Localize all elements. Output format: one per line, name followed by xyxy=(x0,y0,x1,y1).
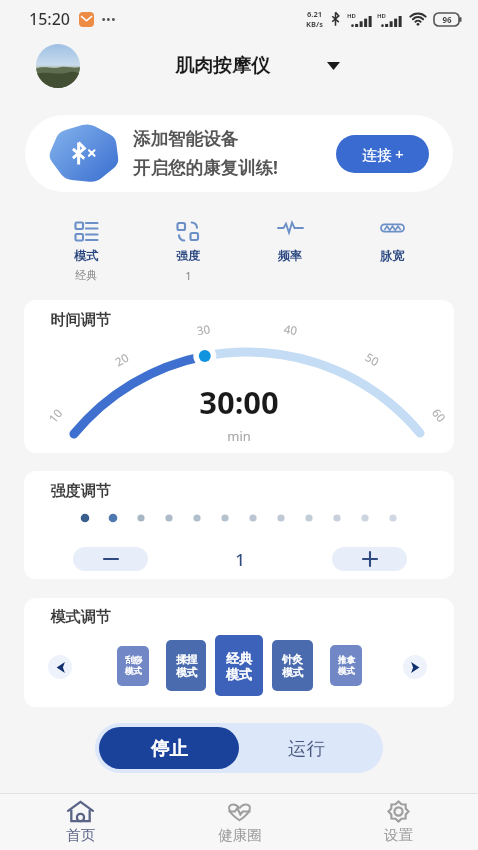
staticText: 经典 xyxy=(75,268,97,282)
staticText: 连接 + xyxy=(362,144,404,164)
staticText: 频率 xyxy=(278,248,302,263)
button[interactable]: 脉宽 xyxy=(341,219,443,268)
button[interactable]: Decrease xyxy=(73,547,148,571)
button[interactable]: 针灸 xyxy=(272,640,313,691)
staticText: 1 xyxy=(235,548,245,571)
staticText: 停止 xyxy=(151,737,188,760)
button[interactable]: 揉捏 xyxy=(166,640,206,691)
staticText: 时间调节 xyxy=(50,310,111,329)
staticText: 设置 xyxy=(384,826,413,844)
staticText: HD xyxy=(377,12,386,20)
button[interactable]: 停止 xyxy=(99,727,239,769)
staticText: 6.21 xyxy=(307,9,322,19)
staticText: 模式 xyxy=(338,666,355,677)
button[interactable]: Previous mode xyxy=(48,655,72,679)
staticText: 1 xyxy=(185,268,192,283)
staticText: 添加智能设备 xyxy=(133,128,238,150)
button[interactable]: 推拿 xyxy=(330,645,362,686)
staticText: 模式 xyxy=(282,666,303,679)
staticText: 运行 xyxy=(288,737,325,760)
staticText: ··· xyxy=(101,8,116,31)
button[interactable]: 添加智能设备 xyxy=(25,115,453,192)
staticText: 模式 xyxy=(125,666,142,677)
staticText: 脉宽 xyxy=(380,248,404,263)
staticText: 首页 xyxy=(66,826,95,844)
button[interactable]: 设置 xyxy=(319,800,478,844)
button[interactable]: 模式 xyxy=(35,219,137,282)
staticText: KB/s xyxy=(306,19,323,29)
staticText: 开启您的康复训练! xyxy=(133,155,278,179)
staticText: 健康圈 xyxy=(218,826,262,844)
button[interactable]: 经典 xyxy=(215,635,263,696)
button[interactable]: 强度 xyxy=(137,219,239,283)
button[interactable]: 连接 + xyxy=(336,135,429,173)
staticText: 模式 xyxy=(226,666,252,682)
staticText: 强度调节 xyxy=(50,481,111,500)
button[interactable]: Next mode xyxy=(403,655,427,679)
staticText: 刮痧 xyxy=(125,655,142,666)
staticText: 强度 xyxy=(176,248,200,263)
staticText: 针灸 xyxy=(282,653,303,666)
staticText: 肌肉按摩仪 xyxy=(175,54,270,78)
staticText: 96 xyxy=(442,14,452,25)
staticText: 模式调节 xyxy=(50,607,111,626)
button[interactable]: Profile xyxy=(36,44,80,88)
staticText: 推拿 xyxy=(338,655,355,666)
staticText: 30:00 xyxy=(199,381,279,423)
staticText: 揉捏 xyxy=(176,653,197,666)
button[interactable]: 运行 xyxy=(230,723,383,773)
staticText: 模式 xyxy=(74,248,98,263)
staticText: 模式 xyxy=(176,666,197,679)
button[interactable]: Select device xyxy=(321,54,345,78)
staticText: 经典 xyxy=(226,650,252,666)
staticText: 15:20 xyxy=(29,8,70,30)
button[interactable]: 首页 xyxy=(0,800,160,844)
staticText: HD xyxy=(347,12,356,20)
button[interactable]: 刮痧 xyxy=(117,646,149,686)
button[interactable]: Increase xyxy=(332,547,407,571)
staticText: min xyxy=(227,427,251,445)
button[interactable]: 频率 xyxy=(239,219,341,268)
button[interactable]: 健康圈 xyxy=(160,800,319,844)
